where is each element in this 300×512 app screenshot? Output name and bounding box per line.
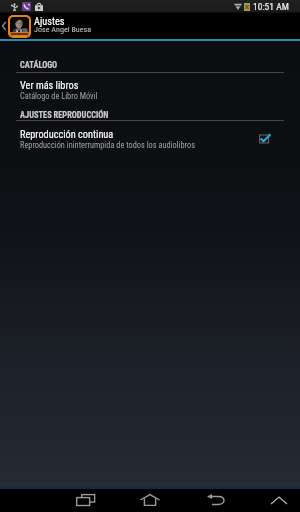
- staticText: Ajustes: [34, 15, 65, 27]
- staticText: Ver más libros: [20, 79, 79, 91]
- staticText: AJUSTES REPRODUCCIÓN: [20, 110, 109, 120]
- staticText: CATÁLOGO: [20, 60, 58, 70]
- button[interactable]: Back: [199, 488, 233, 511]
- staticText: Reproducción ininterrumpida de todos los…: [20, 140, 195, 150]
- button[interactable]: Navigate up: [0, 13, 300, 39]
- other: Navigate up: [2, 22, 6, 30]
- button[interactable]: Home: [133, 488, 167, 511]
- staticText: 10:51 AM: [253, 1, 289, 12]
- staticText: Reproducción continua: [20, 128, 114, 140]
- button[interactable]: Ver más libros: [0, 79, 300, 101]
- staticText: Jose Angel Buesa: [34, 24, 92, 33]
- button[interactable]: Toggle continuous playback: [260, 129, 284, 149]
- staticText: Catálogo de Libro Móvil: [20, 91, 98, 101]
- button[interactable]: Reproducción continua: [0, 128, 300, 150]
- button[interactable]: Recent apps: [68, 488, 102, 511]
- button[interactable]: Expand: [262, 489, 296, 512]
